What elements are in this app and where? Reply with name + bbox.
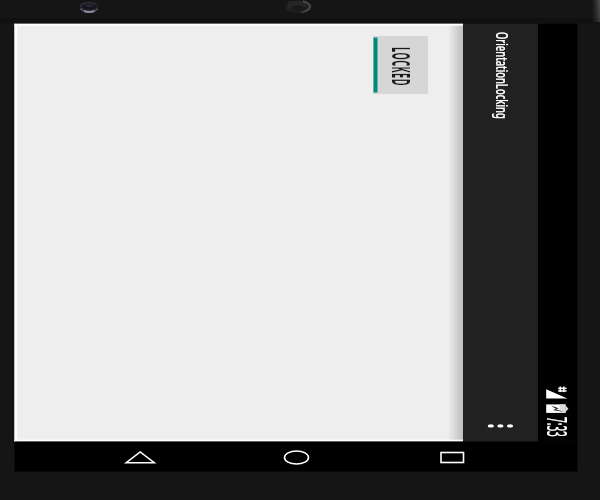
staticText: LOCKED	[384, 47, 419, 86]
button[interactable]: Back	[100, 442, 182, 472]
button[interactable]: LOCKED	[373, 36, 428, 94]
staticText: OrientationLocking	[491, 32, 514, 119]
button[interactable]: Recent apps	[411, 442, 493, 472]
button[interactable]: Home	[256, 442, 338, 472]
staticText: 7:33	[539, 417, 577, 437]
button[interactable]: More options	[481, 406, 519, 442]
